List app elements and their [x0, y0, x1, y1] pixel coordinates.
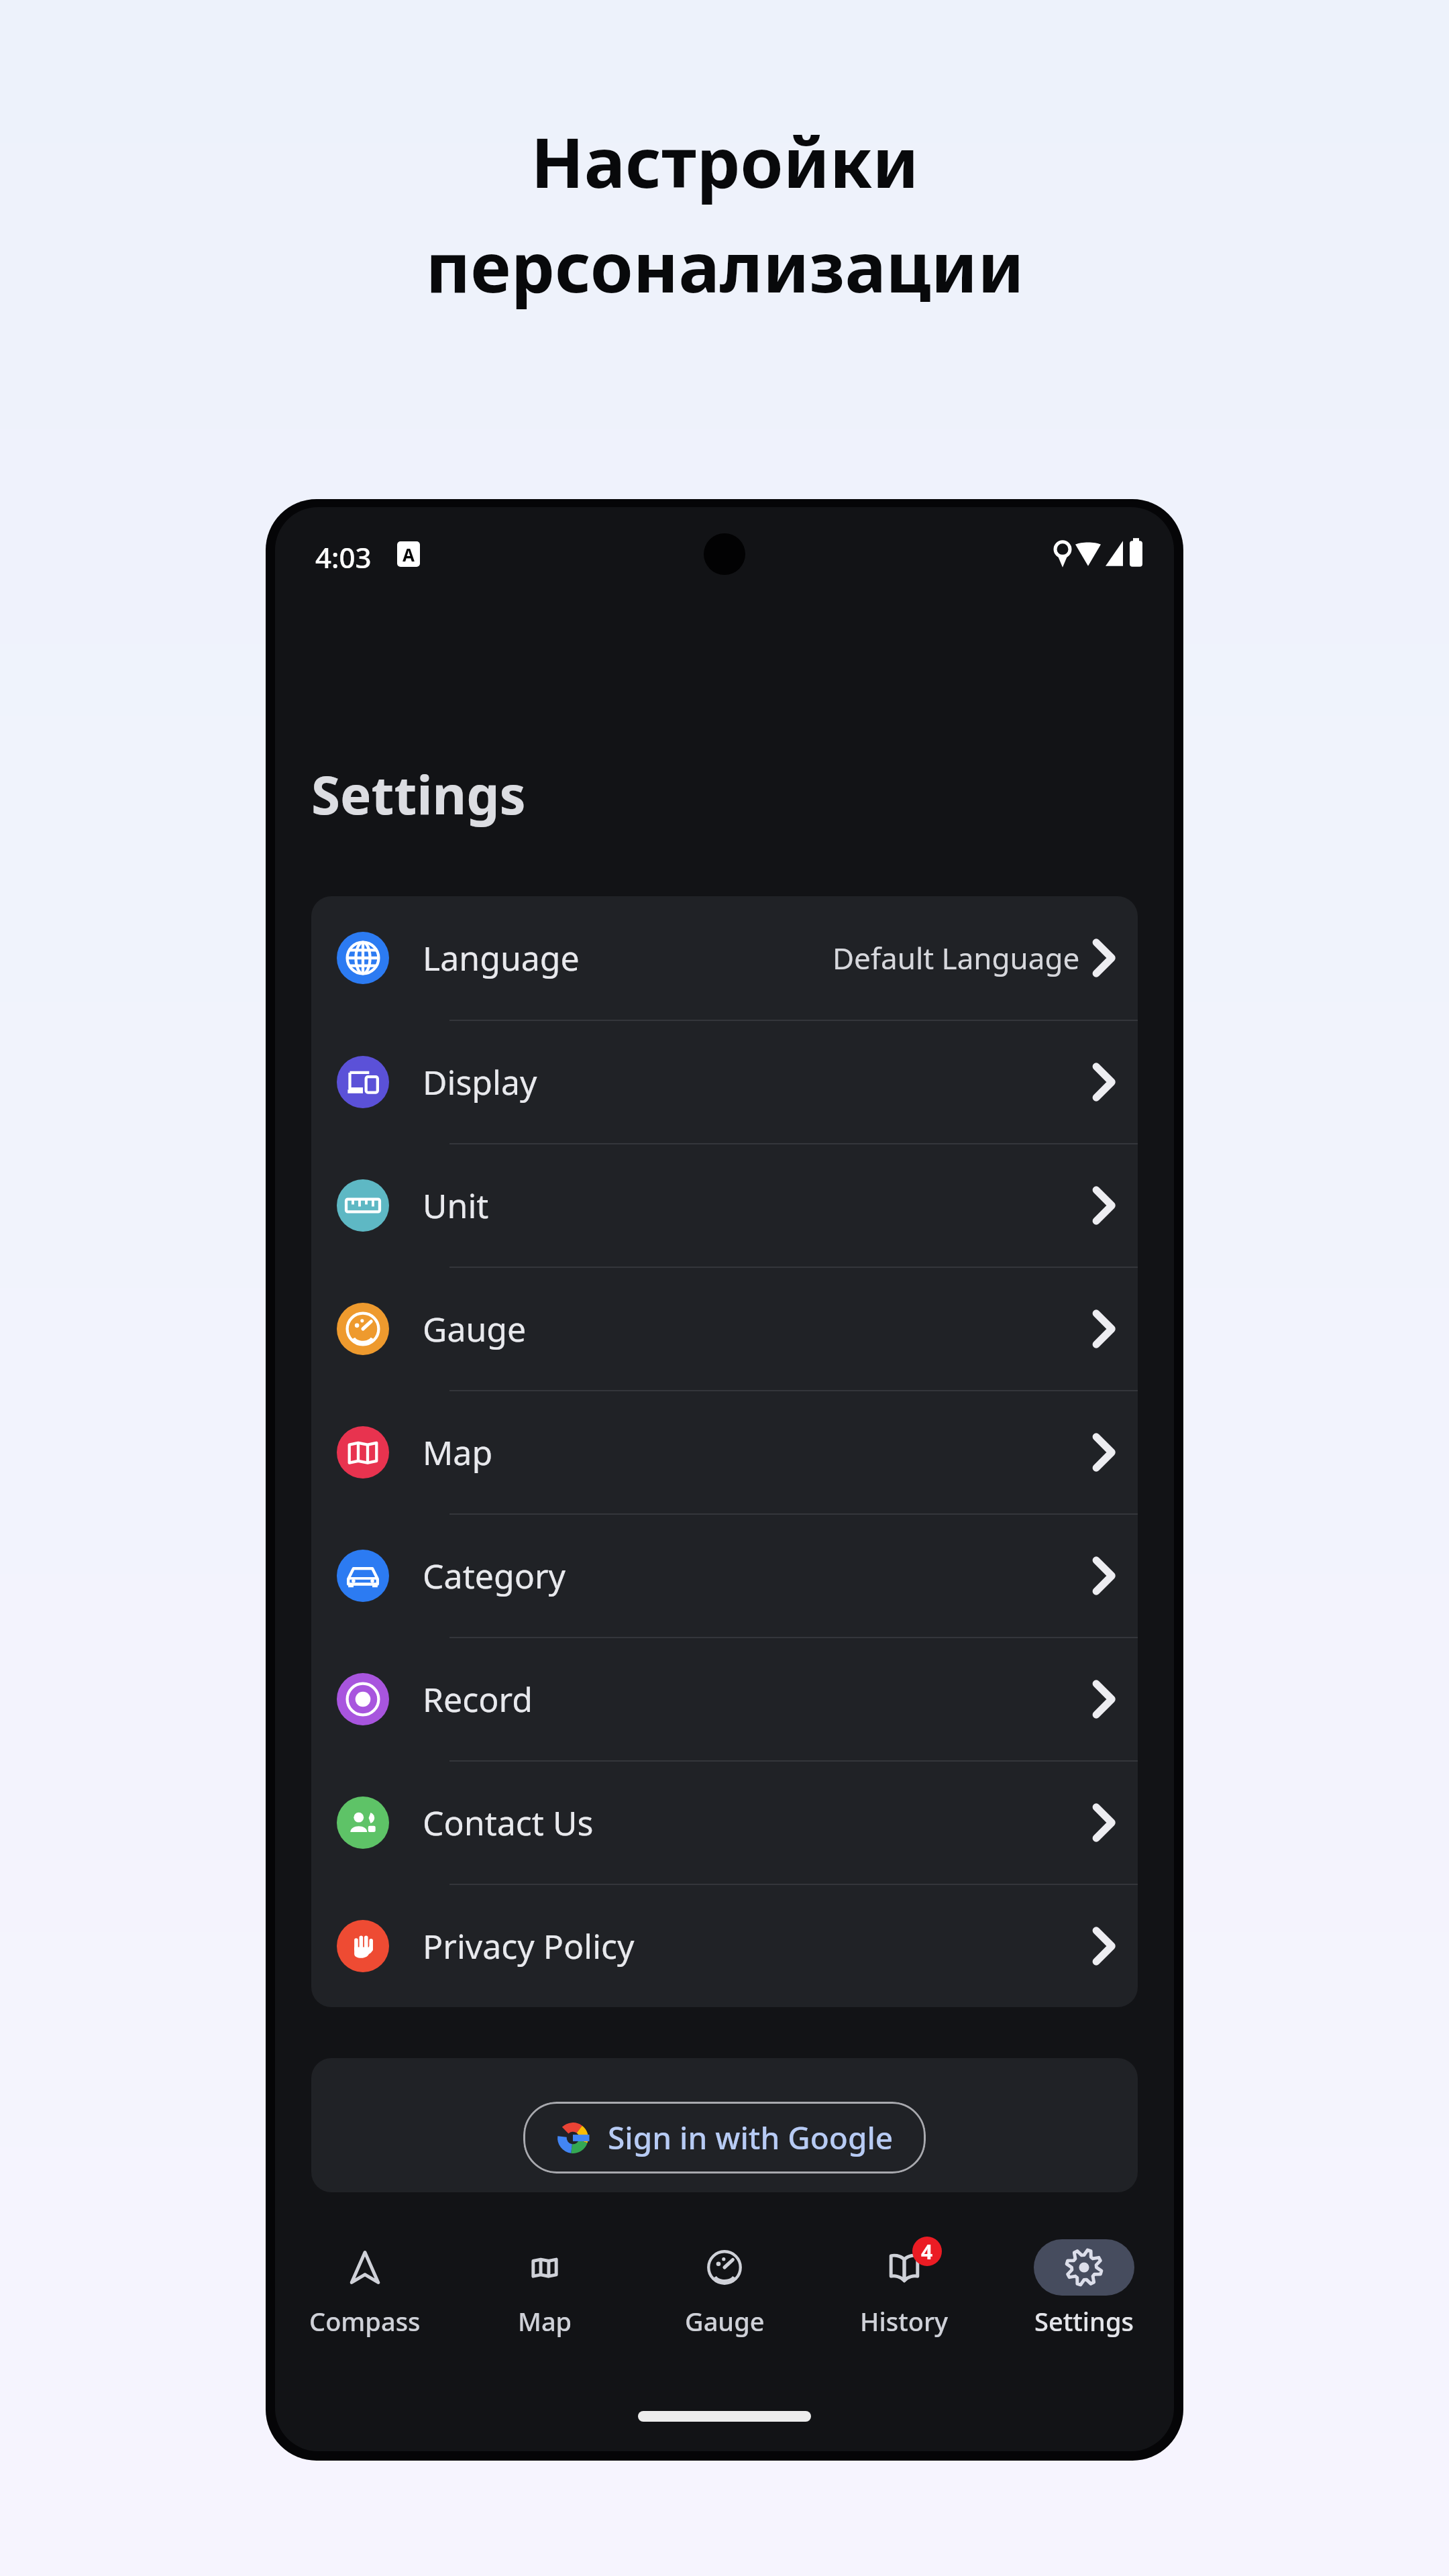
button[interactable]: Gauge — [635, 2224, 814, 2359]
button[interactable]: Contact Us — [311, 1762, 1138, 1884]
staticText: A — [402, 543, 415, 566]
staticText: Language — [423, 935, 580, 981]
other: Map — [523, 2245, 567, 2290]
button[interactable]: Display — [311, 1021, 1138, 1143]
button[interactable]: Settings — [994, 2224, 1174, 2359]
staticText: Map — [518, 2304, 572, 2339]
staticText: Sign in with Google — [608, 2116, 894, 2159]
button[interactable]: Compass — [275, 2224, 455, 2359]
staticText: Gauge — [423, 1306, 527, 1352]
button[interactable]: Category — [311, 1515, 1138, 1637]
staticText: Privacy Policy — [423, 1923, 635, 1969]
other: Settings — [1062, 2245, 1106, 2290]
other: Gauge — [702, 2245, 747, 2290]
button[interactable]: Record — [311, 1638, 1138, 1760]
staticText: Record — [423, 1676, 533, 1722]
staticText: Display — [423, 1059, 537, 1105]
other: History — [882, 2245, 926, 2290]
staticText: 4:03 — [315, 538, 372, 576]
staticText: Настройки — [531, 114, 919, 208]
button[interactable]: Language — [311, 896, 1138, 1020]
staticText: Compass — [309, 2304, 421, 2339]
staticText: 4 — [921, 2238, 933, 2265]
staticText: Default Language — [833, 938, 1080, 978]
staticText: персонализации — [425, 219, 1024, 313]
staticText: Settings — [1034, 2304, 1134, 2339]
staticText: Unit — [423, 1183, 489, 1228]
staticText: Map — [423, 1430, 493, 1475]
button[interactable]: Privacy Policy — [311, 1885, 1138, 2007]
button[interactable]: Map — [455, 2224, 635, 2359]
button[interactable]: Unit — [311, 1144, 1138, 1267]
staticText: Settings — [311, 759, 526, 830]
button[interactable]: History — [814, 2224, 994, 2359]
button[interactable]: Gauge — [311, 1268, 1138, 1390]
staticText: Category — [423, 1553, 566, 1599]
button[interactable]: Map — [311, 1391, 1138, 1513]
staticText: History — [860, 2304, 949, 2339]
other: Compass — [343, 2245, 387, 2290]
button[interactable]: Sign in with Google — [523, 2102, 926, 2173]
staticText: Contact Us — [423, 1800, 594, 1845]
staticText: Gauge — [685, 2304, 765, 2339]
